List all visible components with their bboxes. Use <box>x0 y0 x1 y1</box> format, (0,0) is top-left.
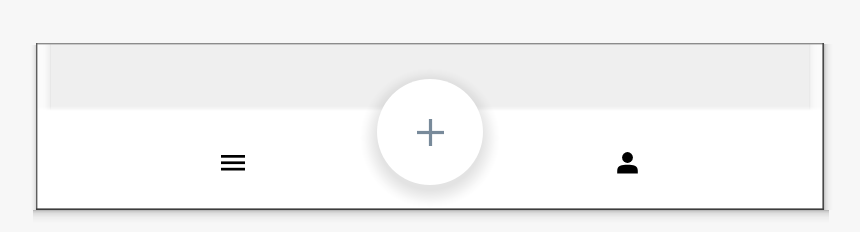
button[interactable]: Menu <box>209 139 257 187</box>
button[interactable]: Account <box>603 139 651 187</box>
button[interactable]: Add <box>377 79 483 185</box>
